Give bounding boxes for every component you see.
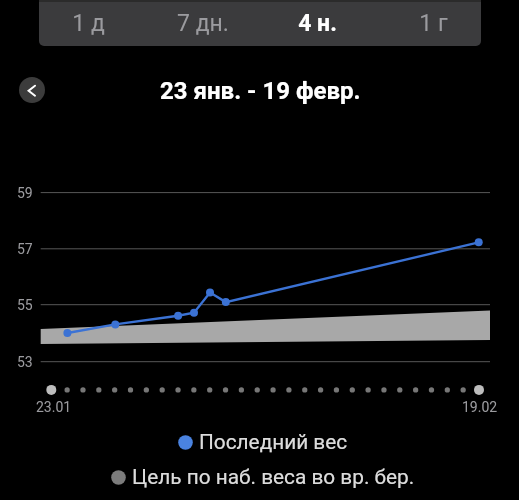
staticText: 59 bbox=[17, 185, 33, 201]
staticText: 4 н. bbox=[298, 10, 337, 37]
staticText: 55 bbox=[17, 297, 33, 313]
button[interactable]: 1 г bbox=[375, 0, 481, 46]
staticText: 23.01 bbox=[36, 399, 72, 415]
staticText: 53 bbox=[17, 354, 33, 370]
button[interactable]: 1 д bbox=[39, 0, 145, 46]
staticText: 1 д bbox=[72, 10, 105, 37]
staticText: Последний вес bbox=[199, 430, 348, 454]
button[interactable]: Назад bbox=[19, 77, 45, 103]
staticText: Цель по наб. веса во вр. бер. bbox=[132, 465, 415, 489]
staticText: 19.02 bbox=[462, 399, 498, 415]
button[interactable]: 4 н. bbox=[259, 0, 375, 46]
button[interactable]: 7 дн. bbox=[145, 0, 260, 46]
staticText: 7 дн. bbox=[177, 10, 229, 37]
staticText: 23 янв. - 19 февр. bbox=[160, 77, 361, 105]
staticText: 57 bbox=[17, 241, 33, 257]
staticText: 1 г bbox=[419, 10, 448, 37]
